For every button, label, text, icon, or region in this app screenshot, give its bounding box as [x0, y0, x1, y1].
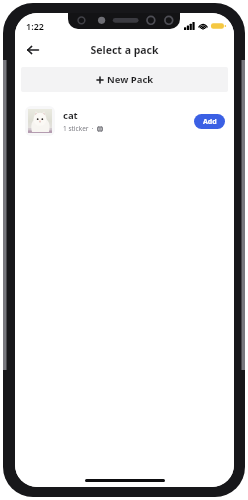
- button[interactable]: cat: [15, 102, 234, 140]
- staticText: cat: [63, 109, 78, 122]
- staticText: 1 sticker ·: [63, 124, 94, 133]
- button[interactable]: Back: [20, 37, 45, 62]
- button[interactable]: New Pack: [21, 67, 228, 92]
- button[interactable]: Add: [194, 114, 225, 129]
- staticText: Select a pack: [90, 43, 159, 57]
- staticText: New Pack: [107, 73, 154, 86]
- staticText: Add: [203, 117, 217, 127]
- staticText: 1:22: [26, 20, 44, 32]
